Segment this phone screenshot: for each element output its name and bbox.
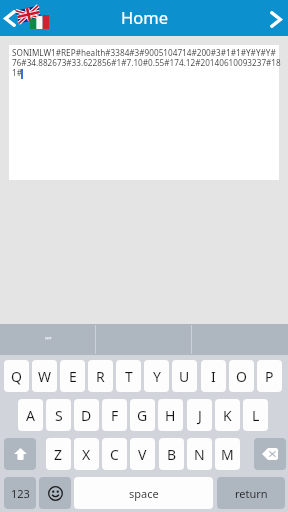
- button[interactable]: E: [60, 360, 85, 392]
- staticText: P: [265, 367, 274, 386]
- button[interactable]: Back: [0, 3, 22, 36]
- button[interactable]: L: [243, 399, 268, 431]
- staticText: G: [137, 406, 148, 425]
- staticText: Z: [54, 445, 63, 464]
- staticText: Y: [153, 367, 161, 386]
- button[interactable]: V: [130, 438, 155, 470]
- staticText: T: [125, 367, 133, 386]
- button[interactable]: I: [201, 360, 226, 392]
- button[interactable]: B: [159, 438, 184, 470]
- staticText: K: [223, 406, 232, 425]
- staticText: O: [236, 367, 247, 386]
- staticText: V: [138, 445, 147, 464]
- button[interactable]: K: [215, 399, 240, 431]
- button[interactable]: Shift: [4, 438, 36, 470]
- staticText: M: [221, 445, 234, 464]
- button[interactable]: Y: [144, 360, 169, 392]
- staticText: U: [179, 367, 190, 386]
- button[interactable]: 123: [4, 477, 36, 509]
- button[interactable]: N: [187, 438, 212, 470]
- button[interactable]: G: [130, 399, 155, 431]
- staticText: C: [110, 445, 119, 464]
- staticText: I: [211, 367, 216, 386]
- button[interactable]: return: [217, 477, 285, 509]
- staticText: “”: [45, 334, 52, 346]
- button[interactable]: T: [116, 360, 141, 392]
- staticText: N: [194, 445, 205, 464]
- staticText: D: [81, 406, 92, 425]
- staticText: Home: [121, 6, 168, 28]
- staticText: R: [96, 367, 105, 386]
- staticText: F: [111, 406, 119, 425]
- button[interactable]: Backspace: [254, 438, 286, 470]
- button[interactable]: W: [32, 360, 57, 392]
- button[interactable]: A: [18, 399, 43, 431]
- button[interactable]: Language: [17, 5, 50, 31]
- button[interactable]: R: [88, 360, 113, 392]
- staticText: Q: [11, 367, 22, 386]
- staticText: W: [38, 367, 52, 386]
- button[interactable]: Forward: [264, 3, 288, 36]
- staticText: space: [129, 486, 159, 501]
- staticText: 123: [11, 486, 30, 501]
- button[interactable]: P: [257, 360, 282, 392]
- button[interactable]: Emoji: [39, 477, 71, 509]
- staticText: return: [235, 486, 268, 501]
- button[interactable]: F: [102, 399, 127, 431]
- button[interactable]: S: [46, 399, 71, 431]
- button[interactable]: U: [172, 360, 197, 392]
- button[interactable]: D: [74, 399, 99, 431]
- button[interactable]: M: [215, 438, 240, 470]
- staticText: J: [198, 406, 202, 425]
- button[interactable]: Z: [46, 438, 71, 470]
- staticText: A: [26, 406, 35, 425]
- staticText: E: [69, 367, 77, 386]
- button[interactable]: C: [102, 438, 127, 470]
- button[interactable]: “”: [0, 324, 96, 355]
- button[interactable]: space: [74, 477, 213, 509]
- button[interactable]: J: [187, 399, 212, 431]
- button[interactable]: Suggestion 2: [96, 324, 192, 355]
- button[interactable]: Q: [4, 360, 29, 392]
- staticText: H: [165, 406, 176, 425]
- staticText: SONIMLW1#REP#health#3384#3#9005104714#20…: [12, 47, 281, 78]
- staticText: S: [55, 406, 63, 425]
- staticText: X: [82, 445, 91, 464]
- button[interactable]: X: [74, 438, 99, 470]
- button[interactable]: O: [229, 360, 254, 392]
- staticText: L: [252, 406, 260, 425]
- staticText: B: [167, 445, 177, 464]
- button[interactable]: H: [158, 399, 183, 431]
